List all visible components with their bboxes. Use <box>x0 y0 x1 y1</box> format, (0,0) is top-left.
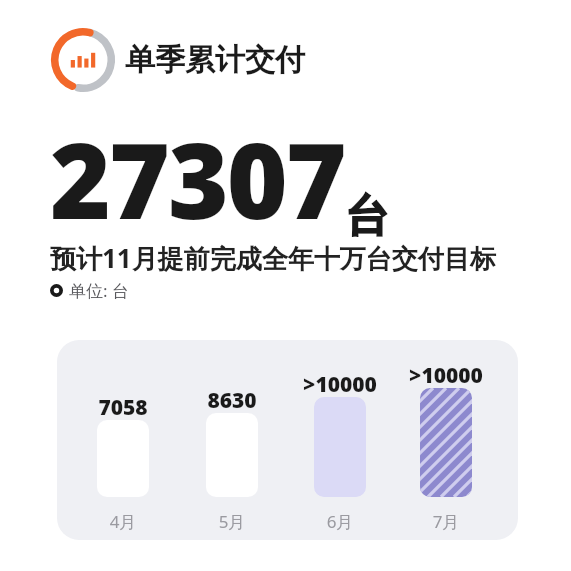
staticText: 单位: 台 <box>69 279 129 302</box>
staticText: 单季累计交付 <box>125 41 305 79</box>
other: Quarterly delivery chart icon <box>47 24 119 96</box>
staticText: >10000 <box>391 361 501 540</box>
staticText: 7058 <box>83 393 163 540</box>
button[interactable]: Quarterly delivery chart icon <box>47 24 305 96</box>
staticText: 4月 <box>88 510 158 540</box>
staticText: 预计11月提前完成全年十万台交付目标 <box>50 240 496 276</box>
staticText: 27307 <box>50 108 345 250</box>
staticText: 8630 <box>192 386 272 540</box>
staticText: >10000 <box>285 370 395 540</box>
staticText: 5月 <box>197 510 267 540</box>
button[interactable]: 7058 <box>57 340 518 540</box>
staticText: 7月 <box>411 510 481 540</box>
staticText: 台 <box>345 189 389 244</box>
staticText: 6月 <box>305 510 375 540</box>
